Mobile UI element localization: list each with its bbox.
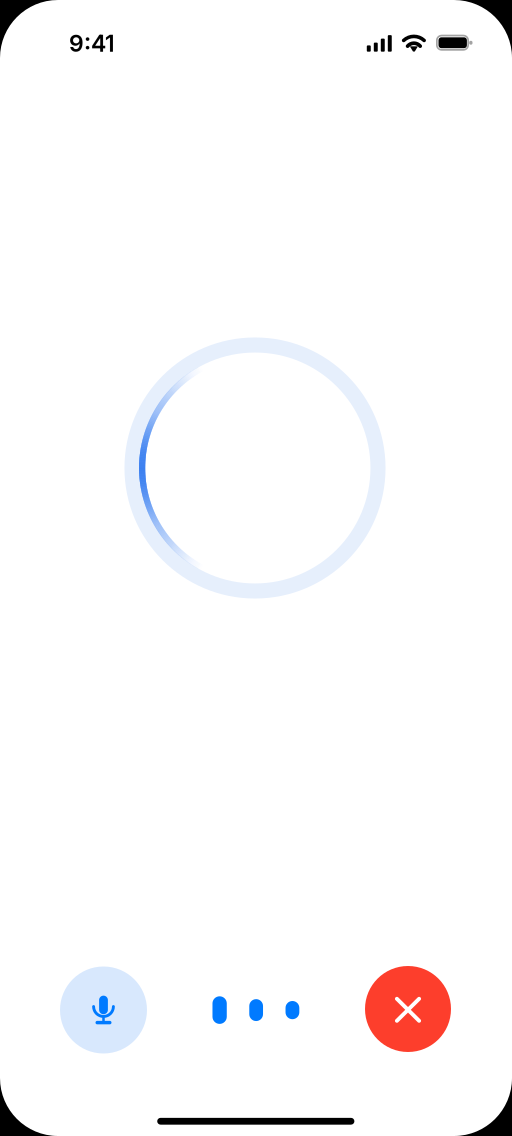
button[interactable]: Microphone [60,966,147,1053]
button[interactable]: End call [365,966,451,1052]
staticText: 9:41 [69,29,115,57]
